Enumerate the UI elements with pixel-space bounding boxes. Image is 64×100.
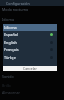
staticText: Español bbox=[4, 32, 19, 37]
button[interactable]: Idioma bbox=[3, 24, 57, 31]
button[interactable]: Cancelar bbox=[3, 66, 57, 71]
staticText: Idioma bbox=[4, 25, 17, 30]
staticText: Türkçe bbox=[4, 55, 16, 60]
button[interactable]: Türkçe bbox=[3, 54, 57, 61]
staticText: Configuración bbox=[6, 1, 30, 6]
button[interactable]: Français bbox=[3, 46, 57, 53]
button[interactable]: English bbox=[3, 39, 57, 46]
button[interactable]: Español bbox=[3, 31, 57, 38]
staticText: Brillo bbox=[2, 83, 11, 88]
staticText: Almacenar bbox=[2, 90, 21, 95]
staticText: Sonido bbox=[2, 74, 14, 79]
button[interactable]: Configuración bbox=[0, 0, 64, 6]
staticText: Idioma bbox=[2, 17, 14, 22]
staticText: English bbox=[4, 40, 17, 45]
staticText: Cancelar bbox=[23, 66, 37, 71]
staticText: Français bbox=[4, 47, 19, 52]
staticText: Modo nocturno bbox=[2, 7, 29, 12]
